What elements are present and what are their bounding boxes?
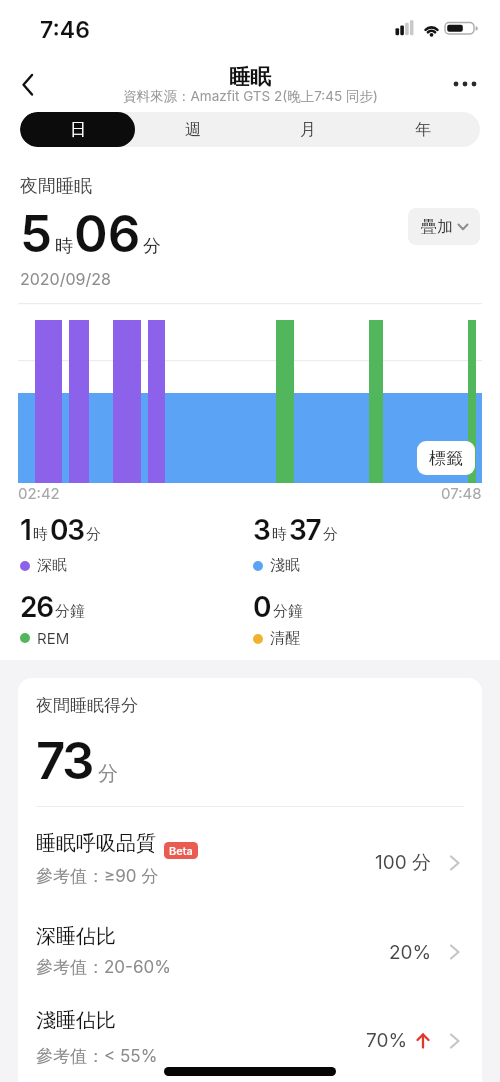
staticText: 03	[50, 513, 84, 547]
button[interactable]: 睡眠呼吸品質	[18, 818, 482, 904]
staticText: 睡眠	[229, 64, 271, 90]
staticText: 時	[55, 235, 73, 258]
staticText: 夜間睡眠	[20, 175, 92, 198]
staticText: 06	[74, 203, 141, 265]
staticText: 參考值：< 55%	[36, 1046, 158, 1068]
staticText: 淺眠	[270, 556, 300, 575]
button[interactable]: 日	[20, 112, 135, 147]
staticText: 夜間睡眠得分	[36, 695, 138, 716]
button[interactable]: 標籤	[417, 441, 475, 475]
staticText: 分	[98, 761, 118, 786]
staticText: 週	[185, 120, 201, 140]
staticText: 0	[253, 590, 271, 624]
staticText: 分	[323, 525, 338, 544]
staticText: 分	[86, 525, 101, 544]
staticText: 標籤	[429, 448, 463, 469]
staticText: 70%	[366, 1029, 408, 1052]
staticText: 睡眠呼吸品質	[36, 831, 156, 856]
staticText: 37	[289, 513, 321, 547]
staticText: 深眠	[37, 556, 67, 575]
staticText: 清醒	[270, 629, 300, 648]
staticText: 100 分	[375, 851, 432, 875]
staticText: 年	[415, 120, 431, 140]
staticText: 02:42	[18, 484, 60, 502]
staticText: 日	[70, 120, 86, 140]
staticText: 2020/09/28	[20, 269, 111, 288]
button[interactable]: 月	[250, 112, 365, 147]
button[interactable]	[10, 70, 46, 100]
staticText: 時	[33, 525, 48, 544]
staticText: 時	[272, 525, 287, 544]
staticText: 1	[20, 513, 31, 547]
staticText: 73	[36, 730, 92, 792]
staticText: 參考值：20-60%	[36, 957, 171, 979]
staticText: 20%	[389, 941, 432, 964]
staticText: 月	[300, 120, 316, 140]
staticText: 分鐘	[273, 602, 303, 621]
staticText: 26	[20, 590, 53, 624]
staticText: 分鐘	[55, 602, 85, 621]
button[interactable]: 疊加	[408, 208, 480, 245]
staticText: 7:46	[40, 16, 90, 44]
staticText: 07:48	[441, 484, 482, 502]
staticText: 疊加	[421, 217, 453, 237]
staticText: 分	[143, 235, 161, 258]
staticText: 深睡佔比	[36, 924, 116, 949]
button[interactable]: 年	[365, 112, 480, 147]
button[interactable]	[448, 70, 486, 98]
staticText: REM	[37, 629, 70, 647]
button[interactable]: 週	[135, 112, 250, 147]
button[interactable]: 深睡佔比	[18, 910, 482, 996]
staticText: 參考值：≥90 分	[36, 866, 159, 888]
staticText: Beta	[169, 844, 193, 857]
staticText: 5	[20, 203, 53, 265]
button[interactable]: 淺睡佔比	[18, 996, 482, 1082]
staticText: 淺睡佔比	[36, 1008, 116, 1033]
staticText: 3	[253, 513, 270, 547]
staticText: 資料來源：Amazfit GTS 2(晚上7:45 同步)	[123, 88, 378, 105]
